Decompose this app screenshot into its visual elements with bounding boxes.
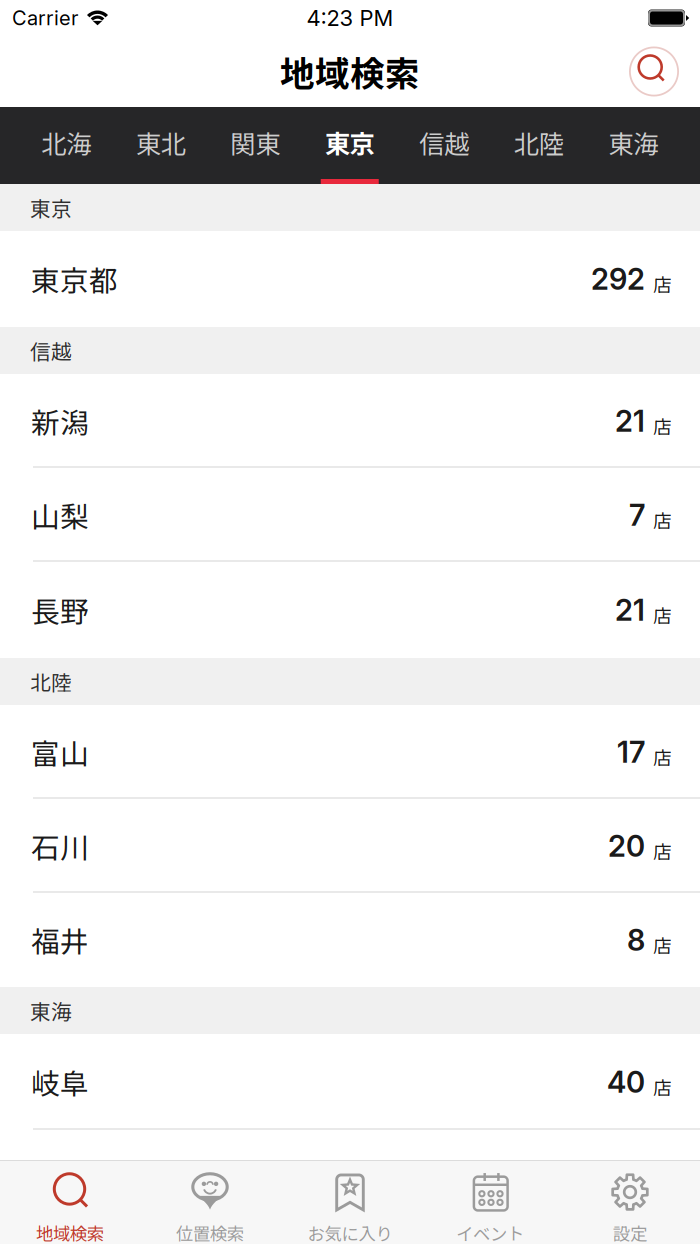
staticText: 55 (609, 1159, 645, 1195)
staticText: 40 (607, 1064, 645, 1100)
staticText: 東海 (608, 124, 658, 161)
staticText: 21 (615, 403, 645, 439)
staticText: 店 (653, 931, 672, 958)
staticText: 東北 (136, 124, 186, 161)
staticText: 地域検索 (36, 1220, 104, 1244)
staticText: 店 (653, 412, 672, 439)
staticText: 山梨 (31, 494, 89, 536)
button[interactable]: 信越 (397, 107, 491, 184)
button[interactable]: 位置検索 (140, 1161, 280, 1244)
button[interactable]: 東北 (113, 107, 208, 184)
staticText: 長野 (31, 589, 89, 631)
button[interactable]: 東京都 (0, 231, 700, 327)
staticText: イベント (456, 1220, 524, 1244)
staticText: 富山 (31, 731, 89, 773)
staticText: 店 (653, 270, 672, 297)
staticText: 8 (627, 922, 645, 958)
button[interactable]: 静岡 (0, 1130, 700, 1224)
staticText: 20 (608, 828, 645, 864)
staticText: 石川 (31, 825, 89, 867)
staticText: 位置検索 (176, 1220, 244, 1244)
staticText: Carrier (12, 6, 78, 30)
button[interactable]: 山梨 (0, 468, 700, 562)
button[interactable]: 長野 (0, 562, 700, 658)
staticText: 福井 (31, 919, 89, 961)
staticText: 信越 (419, 124, 469, 161)
staticText: 21 (615, 592, 645, 628)
button[interactable]: 岐阜 (0, 1034, 700, 1130)
button[interactable]: 北海 (19, 107, 113, 184)
button[interactable]: イベント (420, 1161, 560, 1244)
staticText: 関東 (230, 124, 280, 161)
button[interactable]: 東京 (302, 107, 397, 184)
staticText: 東海 (30, 995, 72, 1025)
staticText: 東京 (30, 192, 72, 222)
staticText: 店 (653, 506, 672, 533)
staticText: お気に入り (307, 1220, 392, 1244)
staticText: 17 (617, 734, 645, 770)
button[interactable]: 石川 (0, 799, 700, 893)
button[interactable]: 設定 (560, 1161, 700, 1244)
staticText: 店 (653, 601, 672, 628)
staticText: 静岡 (31, 1156, 89, 1198)
button[interactable]: お気に入り (280, 1161, 420, 1244)
staticText: 地域検索 (280, 46, 420, 97)
button[interactable]: 福井 (0, 893, 700, 987)
button[interactable]: 新潟 (0, 374, 700, 468)
staticText: 設定 (613, 1220, 647, 1244)
staticText: 北海 (41, 124, 91, 161)
staticText: 東京都 (31, 258, 118, 300)
staticText: 新潟 (31, 400, 89, 442)
staticText: 店 (653, 1073, 672, 1100)
button[interactable]: 東海 (586, 107, 680, 184)
button[interactable]: 地域検索 (0, 1161, 140, 1244)
staticText: 7 (629, 497, 645, 533)
button[interactable]: 富山 (0, 705, 700, 799)
staticText: 292 (591, 261, 645, 297)
staticText: 4:23 PM (306, 5, 393, 31)
button[interactable]: 検索 (625, 42, 683, 100)
button[interactable]: 北陸 (491, 107, 586, 184)
staticText: 北陸 (514, 124, 564, 161)
staticText: 店 (653, 837, 672, 864)
staticText: 店 (653, 743, 672, 770)
staticText: 東京 (325, 124, 375, 161)
staticText: 岐阜 (31, 1061, 89, 1103)
button[interactable]: 関東 (208, 107, 302, 184)
staticText: 信越 (30, 335, 72, 365)
staticText: 北陸 (30, 666, 72, 696)
